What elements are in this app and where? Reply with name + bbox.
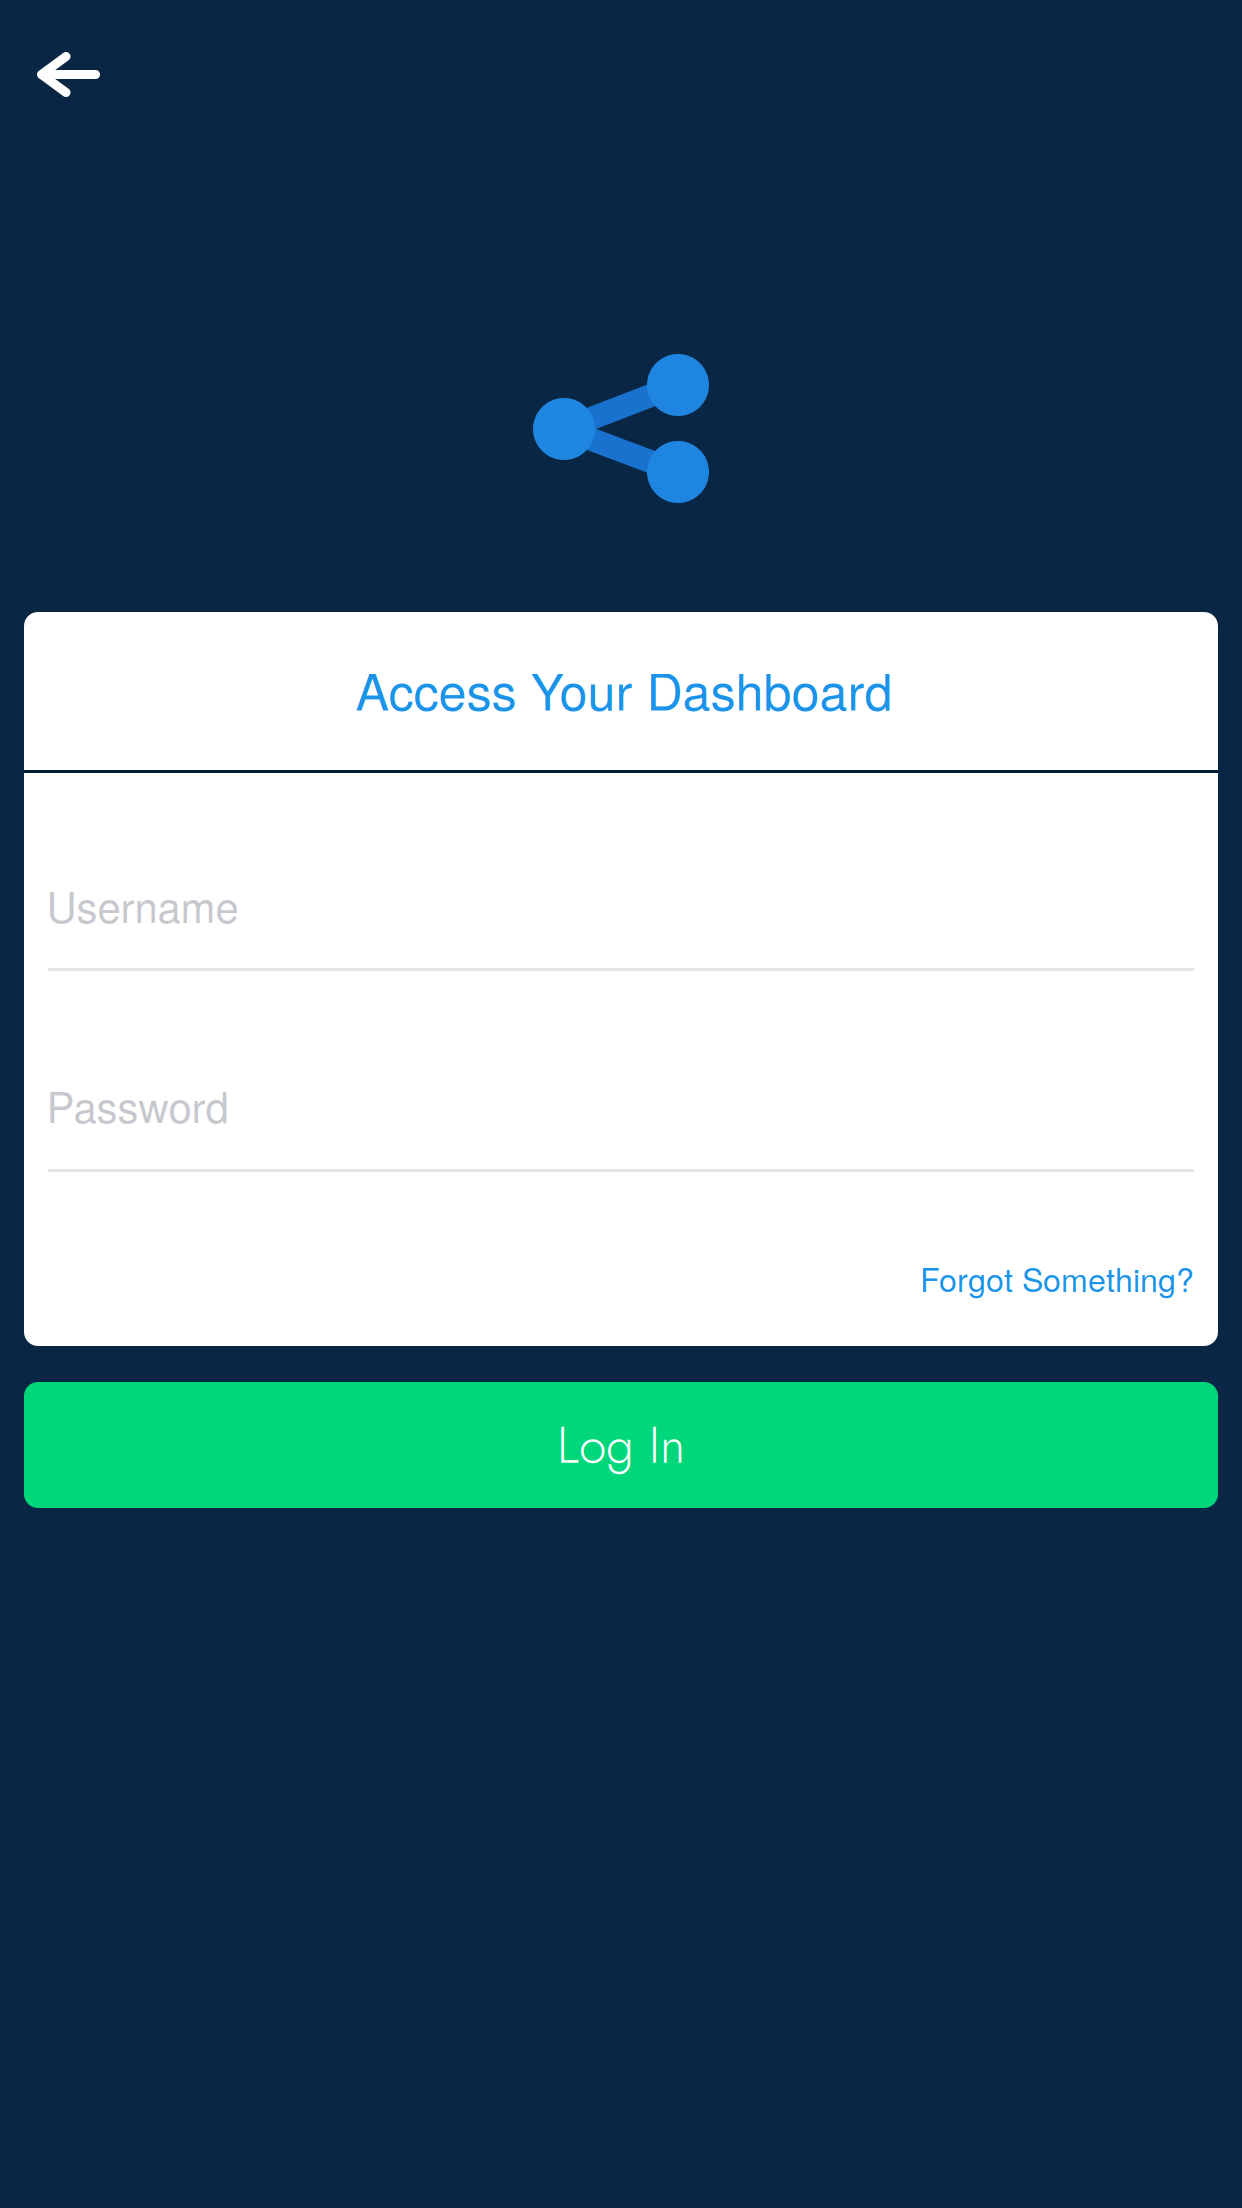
staticText: Password [46,1075,228,1135]
staticText: Access Your Dashboard [355,653,892,725]
button[interactable]: Username [24,612,1218,1346]
button[interactable]: Forgot Something? [920,1255,1194,1301]
staticText: Username [46,875,238,935]
staticText: Log In [557,1410,685,1481]
button[interactable]: Back [12,22,124,126]
staticText: Forgot Something? [920,1255,1194,1301]
button[interactable]: Password [24,612,1218,1346]
button[interactable]: Log In [24,1382,1218,1508]
